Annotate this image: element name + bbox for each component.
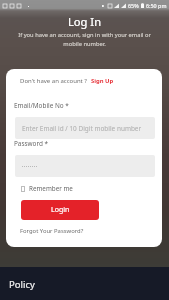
button[interactable]: Policy bbox=[9, 278, 35, 291]
staticText: Login bbox=[51, 205, 70, 215]
staticText: Sign Up bbox=[91, 77, 114, 85]
staticText: Don't have an account ? bbox=[20, 77, 87, 85]
staticText: 65% bbox=[128, 2, 139, 9]
staticText: Email/Mobile No * bbox=[14, 101, 69, 110]
button[interactable]: Enter Email id / 10 Digit mobile number bbox=[15, 117, 155, 139]
staticText: If you have an account, sign in with you… bbox=[8, 31, 161, 48]
button[interactable]: Forgot Your Password? bbox=[20, 227, 84, 235]
staticText: 6:50 pm bbox=[146, 2, 167, 9]
staticText: Remember me bbox=[29, 184, 73, 193]
staticText: Enter Email id / 10 Digit mobile number bbox=[22, 124, 142, 133]
button[interactable]: Remember me bbox=[21, 184, 73, 193]
button[interactable]: Login bbox=[21, 200, 99, 220]
staticText: Log In bbox=[0, 14, 169, 29]
staticText: Password * bbox=[14, 139, 49, 148]
button[interactable]: Sign Up bbox=[91, 77, 114, 85]
staticText: Forgot Your Password? bbox=[20, 227, 84, 235]
